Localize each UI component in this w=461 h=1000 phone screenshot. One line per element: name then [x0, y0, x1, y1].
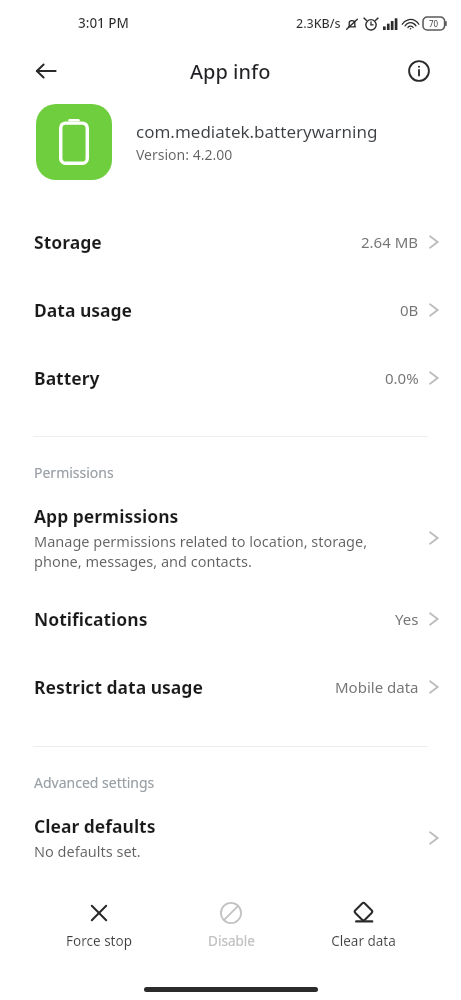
- staticText: Permissions: [34, 463, 114, 482]
- staticText: Clear data: [331, 932, 396, 950]
- staticText: 2.3KB/s: [296, 15, 341, 32]
- button[interactable]: Battery: [0, 344, 461, 412]
- staticText: Advanced settings: [34, 773, 155, 792]
- button[interactable]: Storage: [0, 208, 461, 276]
- staticText: 2.64 MB: [361, 232, 419, 252]
- button[interactable]: Notifications: [0, 585, 461, 653]
- staticText: 70: [429, 18, 439, 29]
- staticText: Force stop: [66, 932, 132, 950]
- button[interactable]: Restrict data usage: [0, 653, 461, 721]
- staticText: Notifications: [34, 607, 148, 631]
- button[interactable]: Disable: [183, 897, 279, 954]
- staticText: Battery: [34, 366, 100, 390]
- staticText: App permissions: [34, 504, 179, 528]
- staticText: Disable: [208, 932, 255, 950]
- staticText: Data usage: [34, 298, 133, 322]
- staticText: App info: [190, 58, 271, 85]
- staticText: Manage permissions related to location, …: [34, 531, 368, 571]
- staticText: 0.0%: [385, 368, 419, 388]
- staticText: Version: 4.2.00: [136, 145, 233, 164]
- button[interactable]: App permissions: [0, 494, 461, 585]
- staticText: Yes: [395, 609, 419, 629]
- button[interactable]: App details info: [397, 49, 441, 93]
- staticText: Storage: [34, 230, 102, 254]
- button[interactable]: Clear defaults: [0, 804, 461, 875]
- staticText: Restrict data usage: [34, 675, 203, 699]
- staticText: No defaults set.: [34, 841, 141, 861]
- staticText: 0B: [400, 300, 419, 320]
- staticText: Mobile data: [335, 677, 419, 697]
- staticText: com.mediatek.batterywarning: [136, 120, 378, 143]
- button[interactable]: Data usage: [0, 276, 461, 344]
- staticText: Clear defaults: [34, 814, 156, 838]
- button[interactable]: Back: [22, 47, 70, 95]
- button[interactable]: Force stop: [51, 897, 147, 954]
- staticText: 3:01 PM: [78, 14, 129, 32]
- button[interactable]: Clear data: [315, 897, 411, 954]
